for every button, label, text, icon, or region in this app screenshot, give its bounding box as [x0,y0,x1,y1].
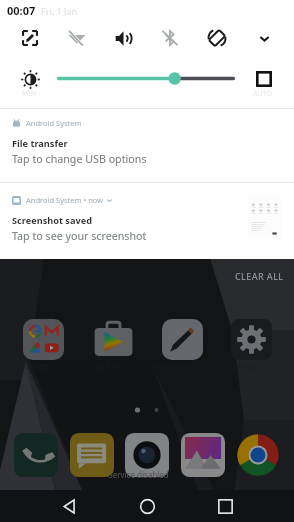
button[interactable]: Google [16,316,71,377]
button[interactable]: Expand [247,21,281,55]
button[interactable]: QuickMemo+ [155,316,210,377]
staticText: Screenshot saved [12,214,93,227]
button[interactable]: Play Store [86,316,141,377]
button[interactable]: Wi-Fi off [60,21,94,55]
staticText: Service disabled [108,469,169,480]
button[interactable]: Home [131,490,163,522]
staticText: Settings [222,362,270,372]
button[interactable]: Sound [106,21,140,55]
staticText: MIN [22,89,37,99]
button[interactable]: Messages [70,433,114,477]
staticText: Google [13,362,61,372]
button[interactable]: Back [53,490,85,522]
button[interactable]: Camera [125,433,169,477]
staticText: Tap to see your screenshot [12,229,147,244]
staticText: AUTO [253,89,273,99]
button[interactable]: Gallery [181,433,225,477]
staticText: Tap to change USB options [12,152,147,167]
staticText: File transfer [12,137,68,150]
button[interactable]: Auto brightness [252,67,276,91]
button[interactable]: Edit quick settings [13,21,47,55]
button[interactable]: Auto rotate [200,21,234,55]
button[interactable]: Minimum brightness [15,64,46,95]
button[interactable]: Phone [14,433,58,477]
button[interactable]: Chrome [236,433,280,477]
button[interactable]: Android System [0,109,294,185]
staticText: Android System [26,118,82,128]
button[interactable]: Settings [224,316,279,377]
button[interactable]: Android System • now [0,186,294,259]
staticText: Fri, 1 Jan [41,5,78,17]
staticText: CLEAR ALL [235,270,284,282]
button[interactable]: CLEAR ALL [227,268,294,284]
button[interactable]: Recents [209,490,241,522]
staticText: Android System • now [26,195,104,205]
button[interactable]: Bluetooth off [153,21,187,55]
button[interactable]: Brightness slider [56,70,236,87]
staticText: 00:07 [7,3,36,18]
